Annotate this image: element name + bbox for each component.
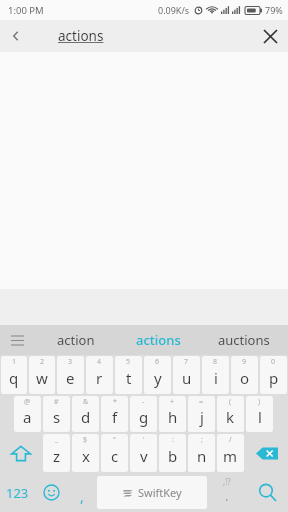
button[interactable]: ) <box>246 396 273 432</box>
button[interactable]: 123 <box>0 473 34 512</box>
staticText: b <box>168 446 178 466</box>
staticText: g <box>139 407 149 427</box>
button[interactable]: 7 <box>173 356 200 394</box>
staticText: z <box>53 446 61 466</box>
button[interactable]: $ <box>72 434 99 472</box>
staticText: * <box>113 397 117 407</box>
button[interactable]: 0 <box>260 356 287 394</box>
staticText: 4 <box>97 357 102 367</box>
button[interactable]: # <box>43 396 70 432</box>
staticText: 6 <box>155 357 160 367</box>
button[interactable]: Clear <box>252 20 288 52</box>
staticText: h <box>168 407 178 427</box>
button[interactable]: = <box>188 396 215 432</box>
button[interactable]: ' <box>130 434 157 472</box>
staticText: & <box>83 397 89 407</box>
button[interactable]: Back <box>0 20 32 52</box>
staticText: action <box>57 331 95 349</box>
staticText: $ <box>83 435 88 445</box>
staticText: _ <box>55 435 59 445</box>
staticText: auctions <box>218 331 270 349</box>
staticText: 0.09K/s <box>158 4 190 16</box>
button[interactable]: 5 <box>115 356 142 394</box>
staticText: u <box>182 368 192 388</box>
staticText: ' <box>143 435 145 445</box>
staticText: = <box>199 397 204 407</box>
button[interactable]: 1 <box>1 356 27 394</box>
staticText: w <box>36 368 48 388</box>
staticText: 3 <box>68 357 73 367</box>
button[interactable]: 2 <box>29 356 55 394</box>
button[interactable]: 9 <box>231 356 258 394</box>
staticText: 9 <box>242 357 247 367</box>
staticText: c <box>111 446 119 466</box>
staticText: @ <box>24 397 31 407</box>
staticText: e <box>66 368 75 388</box>
button[interactable]: - <box>130 396 157 432</box>
staticText: k <box>226 407 235 427</box>
button[interactable]: : <box>159 434 186 472</box>
staticText: t <box>126 368 132 388</box>
staticText: 7 <box>184 357 189 367</box>
staticText: / <box>229 435 232 445</box>
staticText: f <box>112 407 118 427</box>
button[interactable]: / <box>217 434 244 472</box>
staticText: i <box>214 368 218 388</box>
staticText: m <box>223 446 238 466</box>
staticText: . <box>225 487 229 505</box>
staticText: o <box>240 368 250 388</box>
staticText: , <box>80 487 84 506</box>
button[interactable]: , <box>68 473 96 512</box>
button[interactable]: + <box>159 396 186 432</box>
staticText: : <box>172 435 174 445</box>
staticText: s <box>53 407 61 427</box>
staticText: y <box>154 368 162 388</box>
staticText: actions <box>58 27 104 45</box>
staticText: l <box>258 407 262 427</box>
staticText: ( <box>229 397 232 407</box>
button[interactable]: @ <box>14 396 41 432</box>
button[interactable]: 8 <box>202 356 229 394</box>
staticText: - <box>142 397 145 407</box>
button[interactable]: & <box>72 396 99 432</box>
button[interactable]: 3 <box>57 356 84 394</box>
button[interactable]: Search <box>246 473 288 512</box>
staticText: 79% <box>265 4 283 16</box>
button[interactable]: ; <box>188 434 215 472</box>
staticText: n <box>197 446 207 466</box>
button[interactable]: Backspace <box>245 433 288 473</box>
staticText: SwiftKey <box>138 485 182 500</box>
staticText: 1:00 PM <box>8 4 44 17</box>
staticText: 8 <box>213 357 218 367</box>
staticText: " <box>113 435 116 445</box>
button[interactable]: Emoji <box>34 473 68 512</box>
button[interactable]: 4 <box>86 356 113 394</box>
button[interactable]: 6 <box>144 356 171 394</box>
staticText: actions <box>136 331 181 349</box>
button[interactable]: Shift <box>0 433 42 473</box>
staticText: # <box>54 397 59 407</box>
staticText: + <box>170 397 175 407</box>
button[interactable]: auctions <box>200 325 288 355</box>
staticText: ,!? <box>223 476 231 487</box>
staticText: 0 <box>271 357 276 367</box>
button[interactable]: * <box>101 396 128 432</box>
staticText: 1 <box>12 357 17 367</box>
button[interactable]: _ <box>43 434 70 472</box>
staticText: 2 <box>40 357 45 367</box>
button[interactable]: ( <box>217 396 244 432</box>
staticText: ) <box>258 397 261 407</box>
button[interactable]: actions <box>117 325 200 355</box>
staticText: a <box>23 407 32 427</box>
staticText: x <box>82 446 90 466</box>
staticText: 123 <box>6 484 29 502</box>
button[interactable]: Space <box>97 476 207 509</box>
button[interactable]: " <box>101 434 128 472</box>
button[interactable]: Menu <box>0 325 34 355</box>
staticText: ; <box>201 435 203 445</box>
button[interactable]: ,!? <box>208 473 246 512</box>
staticText: v <box>140 446 148 466</box>
staticText: 5 <box>126 357 131 367</box>
button[interactable]: action <box>34 325 117 355</box>
staticText: p <box>269 368 279 388</box>
